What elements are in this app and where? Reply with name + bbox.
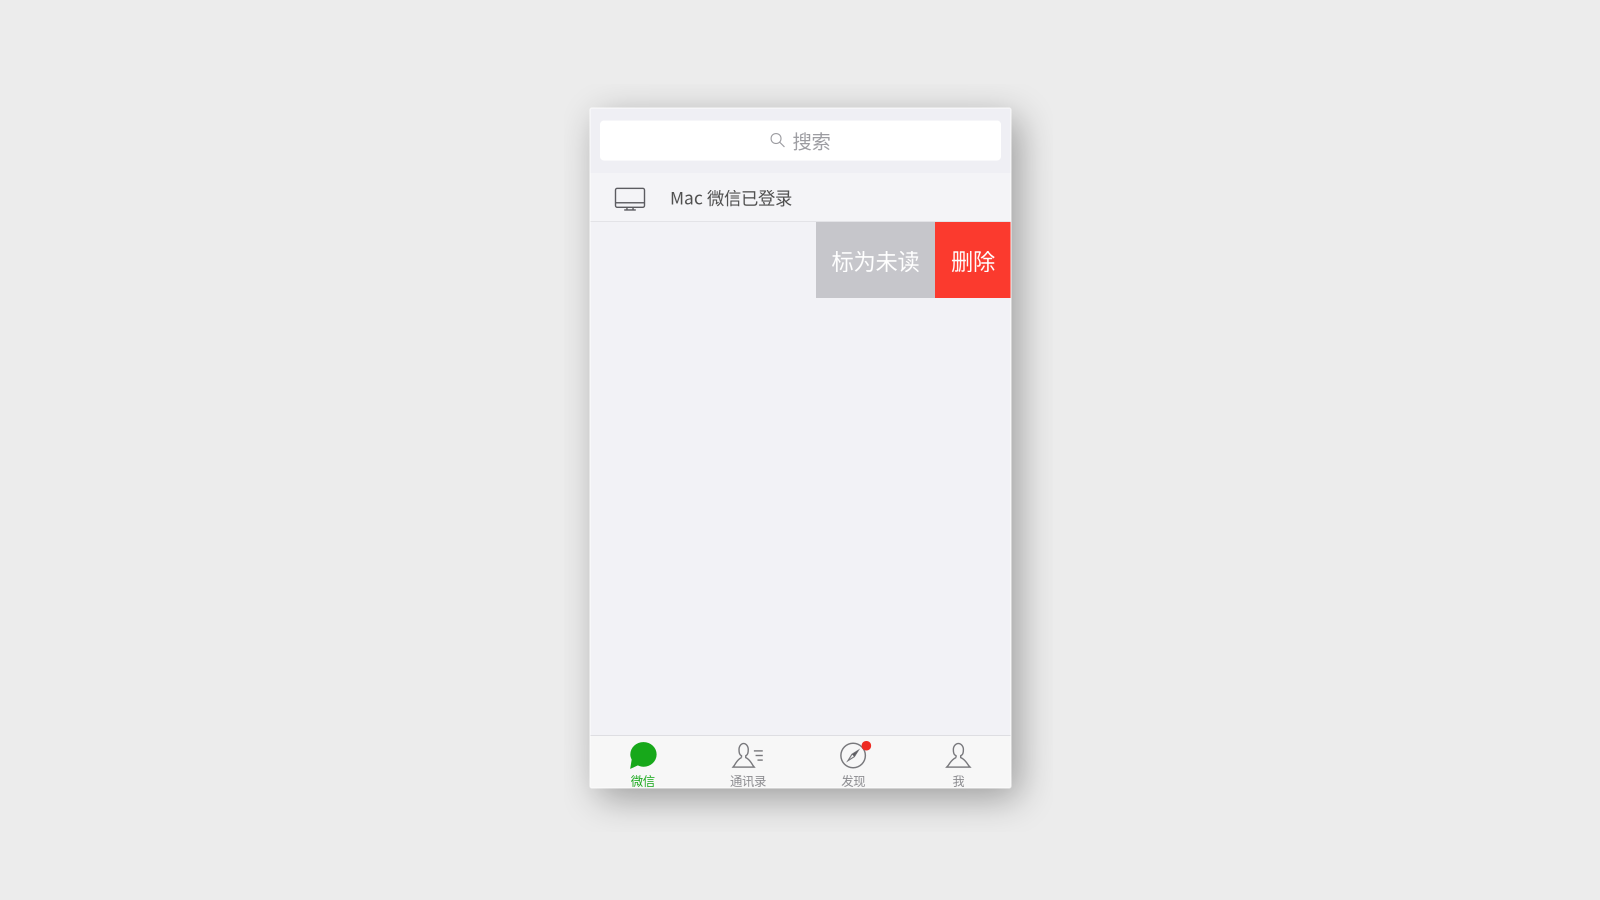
staticText: 微信	[631, 771, 655, 789]
button[interactable]: Mac 微信已登录	[590, 173, 1011, 221]
staticText: 通讯录	[730, 771, 766, 789]
staticText: 搜索	[792, 126, 830, 154]
button[interactable]: 发现	[800, 736, 906, 788]
staticText: 我	[952, 771, 964, 789]
staticText: 标为未读	[831, 244, 919, 276]
button[interactable]: 标为未读	[816, 222, 935, 298]
staticText: 发现	[841, 771, 865, 789]
button[interactable]: 微信	[590, 736, 695, 788]
button[interactable]: 通讯录	[695, 736, 800, 788]
button[interactable]: 删除	[935, 222, 1011, 298]
staticText: Mac 微信已登录	[670, 184, 792, 210]
staticText: 删除	[951, 244, 995, 276]
button[interactable]: 我	[906, 736, 1011, 788]
button[interactable]: 搜索	[600, 120, 1001, 160]
